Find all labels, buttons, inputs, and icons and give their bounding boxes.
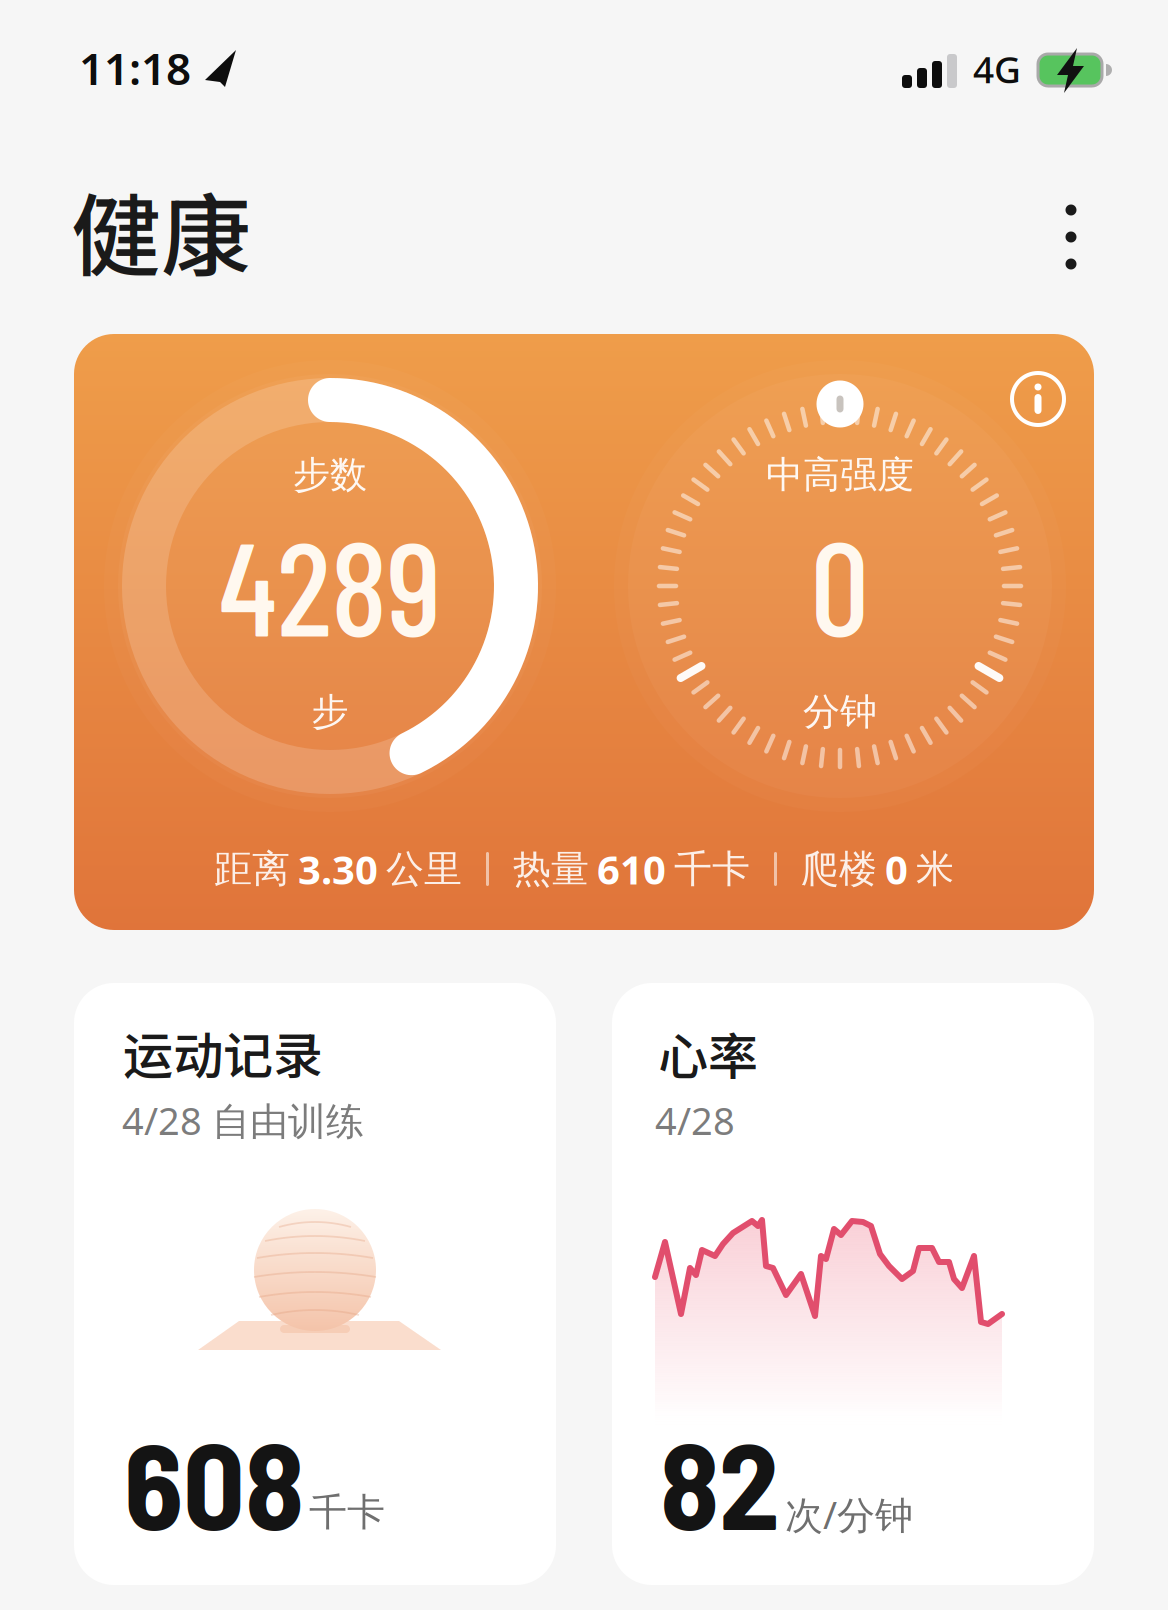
staticText: 中高强度	[766, 452, 914, 498]
staticText: 爬楼	[801, 846, 877, 892]
button[interactable]: 健康数据	[74, 334, 1094, 930]
staticText: 610	[597, 842, 666, 895]
staticText: 运动记录	[123, 1016, 323, 1088]
staticText: 82	[660, 1409, 779, 1554]
staticText: 分钟	[803, 689, 877, 735]
staticText: 步数	[293, 452, 367, 498]
button[interactable]: 心率	[612, 983, 1094, 1585]
staticText: 公里	[386, 846, 462, 892]
staticText: 4/28	[655, 1095, 735, 1145]
staticText: 次/分钟	[785, 1489, 913, 1539]
staticText: 千卡	[674, 846, 750, 892]
staticText: 0	[810, 505, 869, 663]
staticText: 4G	[973, 44, 1021, 93]
staticText: 4/28 自由训练	[122, 1095, 364, 1145]
staticText: 步	[311, 689, 348, 735]
button[interactable]: 信息	[1008, 369, 1068, 429]
staticText: 米	[916, 846, 954, 892]
staticText: 心率	[658, 1017, 758, 1089]
button[interactable]: 更多	[1036, 192, 1106, 282]
staticText: 距离	[214, 846, 290, 892]
button[interactable]: 运动记录	[74, 983, 556, 1585]
staticText: 3.30	[298, 842, 378, 895]
staticText: 千卡	[309, 1489, 385, 1536]
staticText: 608	[124, 1409, 304, 1554]
staticText: 4289	[219, 505, 441, 663]
staticText: 健康	[71, 165, 251, 295]
staticText: 11:18	[79, 39, 191, 97]
staticText: 热量	[513, 846, 589, 892]
staticText: 0	[885, 842, 908, 895]
